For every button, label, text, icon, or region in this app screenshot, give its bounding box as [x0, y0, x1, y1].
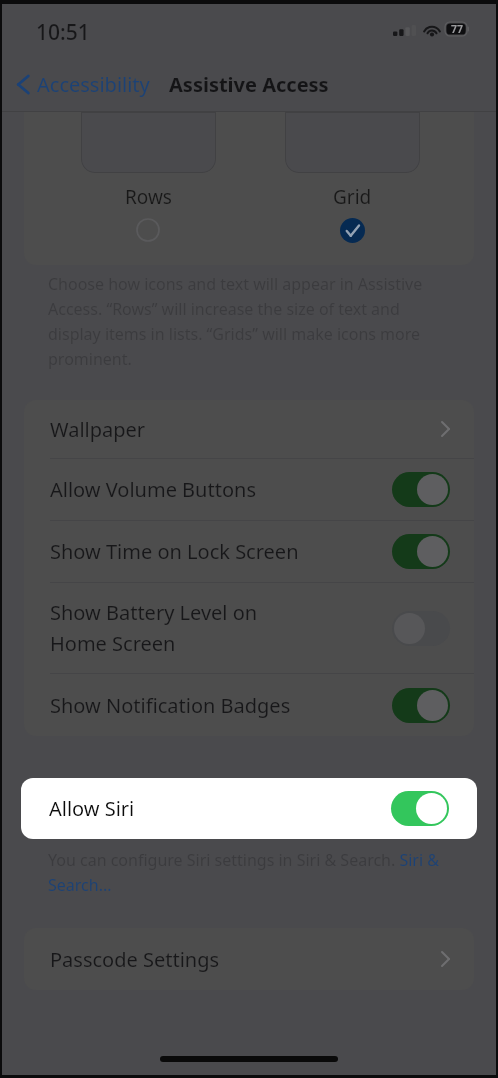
staticText: Show Notification Badges [50, 692, 291, 719]
button[interactable]: Rows [46, 112, 250, 242]
button[interactable]: Wallpaper [24, 400, 474, 458]
button[interactable]: Grid [250, 112, 454, 243]
staticText: Grid [333, 184, 372, 210]
staticText: 77 [451, 22, 464, 36]
staticText: Accessibility [37, 71, 150, 98]
button[interactable]: Show Notification Badges [24, 674, 474, 736]
staticText: Allow Siri [49, 795, 135, 822]
staticText: Assistive Access [169, 71, 329, 98]
staticText: Show Time on Lock Screen [50, 538, 299, 565]
button[interactable]: Allow Volume Buttons [24, 459, 474, 520]
staticText: Choose how icons and text will appear in… [48, 273, 452, 369]
other: Back to Accessibility [16, 73, 30, 96]
button[interactable]: Back to Accessibility [16, 71, 150, 98]
button[interactable]: Allow Siri [21, 778, 477, 839]
staticText: Show Battery Level on Home Screen [50, 599, 258, 657]
staticText: 10:51 [36, 18, 90, 47]
button[interactable]: Passcode Settings [24, 928, 474, 990]
button[interactable]: Show Battery Level on Home Screen [24, 583, 474, 673]
staticText: Allow Volume Buttons [50, 476, 256, 503]
staticText: Rows [125, 184, 172, 210]
button[interactable]: Show Time on Lock Screen [24, 521, 474, 582]
staticText: You can configure Siri settings in Siri … [48, 849, 452, 895]
staticText: Wallpaper [50, 416, 146, 443]
staticText: Passcode Settings [50, 946, 220, 973]
